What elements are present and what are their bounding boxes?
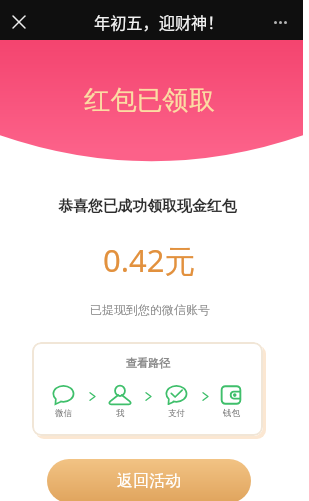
button[interactable]: 返回活动 — [47, 459, 251, 501]
staticText: 微信 — [55, 408, 72, 419]
staticText: 0.42元 — [103, 239, 196, 281]
button[interactable]: 查看路径 — [32, 342, 263, 436]
button[interactable]: Close — [7, 2, 31, 42]
staticText: 返回活动 — [117, 471, 181, 491]
staticText: 恭喜您已成功领取现金红包 — [58, 197, 237, 216]
staticText: 我 — [116, 408, 125, 419]
button[interactable]: More options — [264, 2, 296, 42]
staticText: 支付 — [168, 408, 185, 419]
staticText: 查看路径 — [126, 356, 170, 370]
staticText: 钱包 — [223, 408, 240, 419]
staticText: 年初五，迎财神！ — [94, 10, 224, 33]
staticText: 已提现到您的微信账号 — [90, 302, 210, 317]
staticText: 红包已领取 — [84, 84, 215, 117]
